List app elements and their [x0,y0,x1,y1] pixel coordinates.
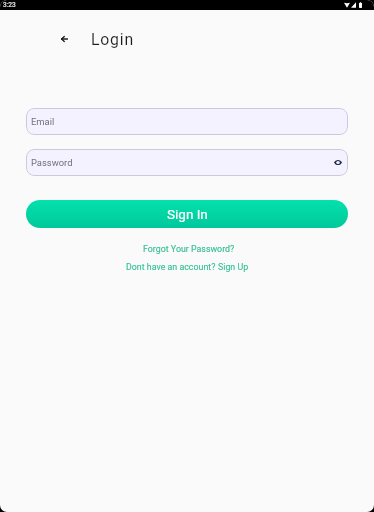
staticText: Sign In [167,206,208,222]
staticText: Forgot Your Password? [143,244,235,254]
button[interactable]: Email [26,108,348,135]
button[interactable]: Show password [331,156,344,169]
button[interactable]: Password [26,149,348,176]
staticText: Email [31,116,55,127]
staticText: Password [31,157,73,168]
staticText: Dont have an account? [126,262,218,272]
button[interactable]: Forgot Your Password? [133,243,241,255]
staticText: Login [91,30,134,49]
staticText: Sign Up [218,262,249,272]
staticText: 3:23 [3,1,16,9]
button[interactable]: Sign In [26,200,348,228]
button[interactable]: Sign Up [218,262,249,272]
button[interactable]: Back [52,27,76,51]
